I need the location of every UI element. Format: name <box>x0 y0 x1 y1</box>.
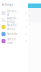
staticText: General <box>7 9 17 17</box>
staticText: Notifications <box>7 23 17 31</box>
button[interactable]: Sounds <box>0 30 28 37</box>
button[interactable]: Screen Time <box>0 37 28 44</box>
button[interactable]: General <box>0 9 28 16</box>
button[interactable]: Accessibility <box>0 16 28 23</box>
staticText: Screen Time <box>7 37 16 45</box>
staticText: Accessibility <box>7 16 17 24</box>
staticText: Sounds <box>7 32 17 36</box>
staticText: Settings <box>1 3 12 6</box>
button[interactable]: Notifications <box>0 23 28 30</box>
